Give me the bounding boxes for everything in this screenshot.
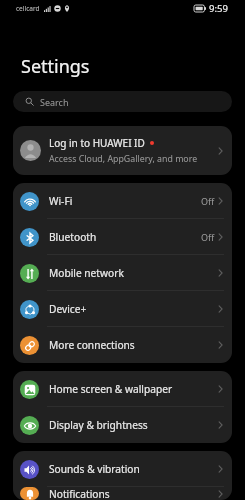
- staticText: Search: [40, 96, 69, 108]
- button[interactable]: Device+: [13, 291, 232, 327]
- staticText: Notifications: [49, 487, 110, 500]
- staticText: 9:59: [209, 2, 228, 15]
- staticText: Wi-Fi: [49, 194, 73, 208]
- staticText: Off: [201, 231, 215, 243]
- staticText: Display & brightness: [49, 418, 148, 432]
- staticText: Mobile network: [49, 266, 124, 280]
- staticText: Off: [201, 195, 215, 207]
- button[interactable]: Wi-Fi: [13, 183, 232, 219]
- button[interactable]: Log in to HUAWEI ID: [13, 126, 232, 175]
- staticText: Home screen & wallpaper: [49, 382, 173, 396]
- staticText: Device+: [49, 302, 87, 316]
- staticText: Access Cloud, AppGallery, and more: [49, 153, 198, 165]
- button[interactable]: Sounds & vibration: [13, 451, 232, 487]
- staticText: More connections: [49, 338, 135, 352]
- staticText: Log in to HUAWEI ID: [49, 136, 145, 150]
- button[interactable]: Display & brightness: [13, 407, 232, 443]
- staticText: Sounds & vibration: [49, 462, 140, 476]
- staticText: cellcard: [16, 4, 40, 13]
- button[interactable]: Notifications: [13, 487, 232, 500]
- button[interactable]: Search: [13, 91, 232, 112]
- staticText: Bluetooth: [49, 230, 97, 244]
- button[interactable]: More connections: [13, 327, 232, 363]
- button[interactable]: Mobile network: [13, 255, 232, 291]
- button[interactable]: Home screen & wallpaper: [13, 371, 232, 407]
- button[interactable]: Bluetooth: [13, 219, 232, 255]
- staticText: Settings: [21, 54, 90, 79]
